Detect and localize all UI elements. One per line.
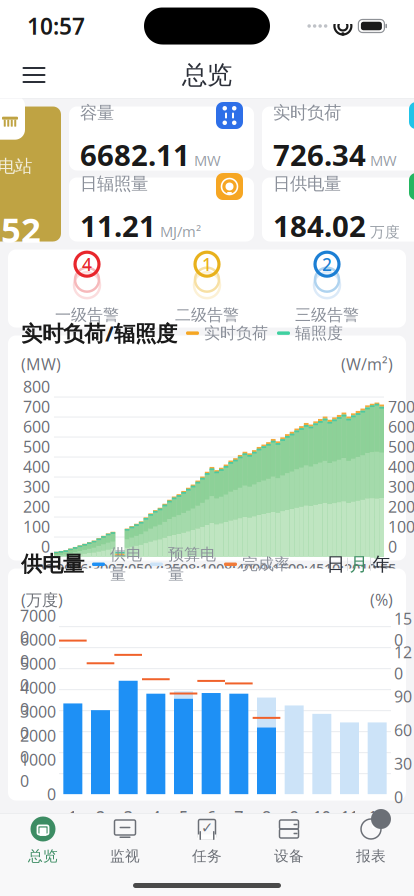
staticText: 三级告警 [295,305,359,325]
staticText: 70000 [20,605,56,647]
staticText: 日辐照量 [80,173,148,194]
button[interactable]: 报表 [330,815,412,865]
button[interactable]: 总电站数 [0,106,61,241]
staticText: 30 [394,753,412,774]
staticText: 1 [68,806,77,827]
button[interactable]: 2 [267,252,387,325]
staticText: 600 [388,416,414,437]
staticText: 总览 [28,847,58,865]
staticText: 0 [41,536,50,557]
staticText: 5 [179,806,188,827]
staticText: 容量 [80,102,114,123]
staticText: 4 [82,253,92,276]
button[interactable]: 实时负荷 [262,106,414,170]
button[interactable]: 1 [147,252,267,325]
button[interactable]: 菜单 [12,53,56,97]
staticText: 400 [23,456,50,477]
staticText: 7 [234,806,243,827]
staticText: (%) [370,589,393,610]
staticText: 200 [23,496,50,517]
staticText: ✓ [201,819,213,836]
staticText: 06:00 [36,559,72,578]
staticText: 0 [394,786,403,808]
staticText: 40000 [20,677,56,719]
staticText: 50000 [20,653,56,695]
staticText: 10 [313,806,331,827]
staticText: 120 [394,641,412,684]
staticText: 2 [96,806,105,827]
staticText: 60000 [20,629,56,671]
staticText: MW [370,150,397,170]
staticText: 一级告警 [55,305,119,325]
staticText: 任务 [192,847,222,865]
staticText: 184.02 [273,206,366,245]
staticText: 2 [322,253,332,276]
staticText: 300 [388,476,414,497]
staticText: 08:40 [216,559,252,578]
staticText: 月 [349,553,368,576]
button[interactable]: 日供电量 [262,177,414,241]
button[interactable]: 总览 [2,815,84,865]
staticText: (万度) [21,589,63,610]
button[interactable]: 日 [325,553,347,576]
staticText: 实时负荷 [204,323,268,343]
staticText: 日供电量 [273,173,341,194]
staticText: 100 [388,516,414,537]
staticText: 1 [202,253,212,276]
staticText: 总览 [182,59,232,90]
staticText: 100 [23,516,50,537]
staticText: 11 [340,806,358,827]
staticText: 12 [368,806,386,827]
staticText: 二级告警 [175,305,239,325]
staticText: 实时负荷/辐照度 [21,319,177,347]
staticText: 10:57 [27,11,85,41]
staticText: 09:45 [288,559,324,578]
staticText: 200 [388,496,414,517]
staticText: 20000 [20,725,56,767]
staticText: 700 [388,396,414,417]
staticText: 10:55 [360,559,396,578]
button[interactable]: 日辐照量 [69,177,254,241]
staticText: 供电量 [21,551,84,577]
button[interactable]: 4 [27,252,147,325]
staticText: 06:30 [72,559,108,578]
staticText: 报表 [356,847,386,865]
staticText: 30000 [20,701,56,743]
staticText: 完成率 [242,554,290,574]
staticText: 500 [388,436,414,457]
button[interactable]: 月 [348,553,370,576]
staticText: 供电量 [110,545,142,584]
staticText: 10:20 [324,559,360,578]
staticText: 09:15 [252,559,288,578]
staticText: 10000 [20,749,56,791]
button[interactable]: 监视 [84,815,166,865]
staticText: 0 [388,536,397,557]
staticText: 预算电量 [168,545,216,584]
staticText: 300 [23,476,50,497]
staticText: 60 [394,719,412,740]
staticText: 8 [262,806,271,827]
staticText: 90 [394,686,412,707]
button[interactable]: ✓ [166,815,248,865]
staticText: 700 [23,396,50,417]
staticText: (W/m²) [341,353,393,374]
staticText: 4 [151,806,160,827]
staticText: 总电站数 [0,156,32,198]
staticText: 07:05 [108,559,144,578]
staticText: 726.34 [273,135,366,174]
staticText: 07:35 [144,559,180,578]
staticText: 400 [388,456,414,477]
button[interactable]: 设备 [248,815,330,865]
staticText: 辐照度 [295,323,343,343]
staticText: 08:10 [180,559,216,578]
staticText: (MW) [21,353,61,374]
staticText: MW [194,150,221,170]
button[interactable]: 年 [371,553,393,576]
button[interactable]: 容量 [69,106,254,170]
staticText: 监视 [110,847,140,865]
staticText: 11.21 [80,206,156,245]
staticText: MJ/m² [160,221,201,241]
staticText: 6 [207,806,216,827]
staticText: 设备 [274,847,304,865]
staticText: 日 [326,553,345,576]
